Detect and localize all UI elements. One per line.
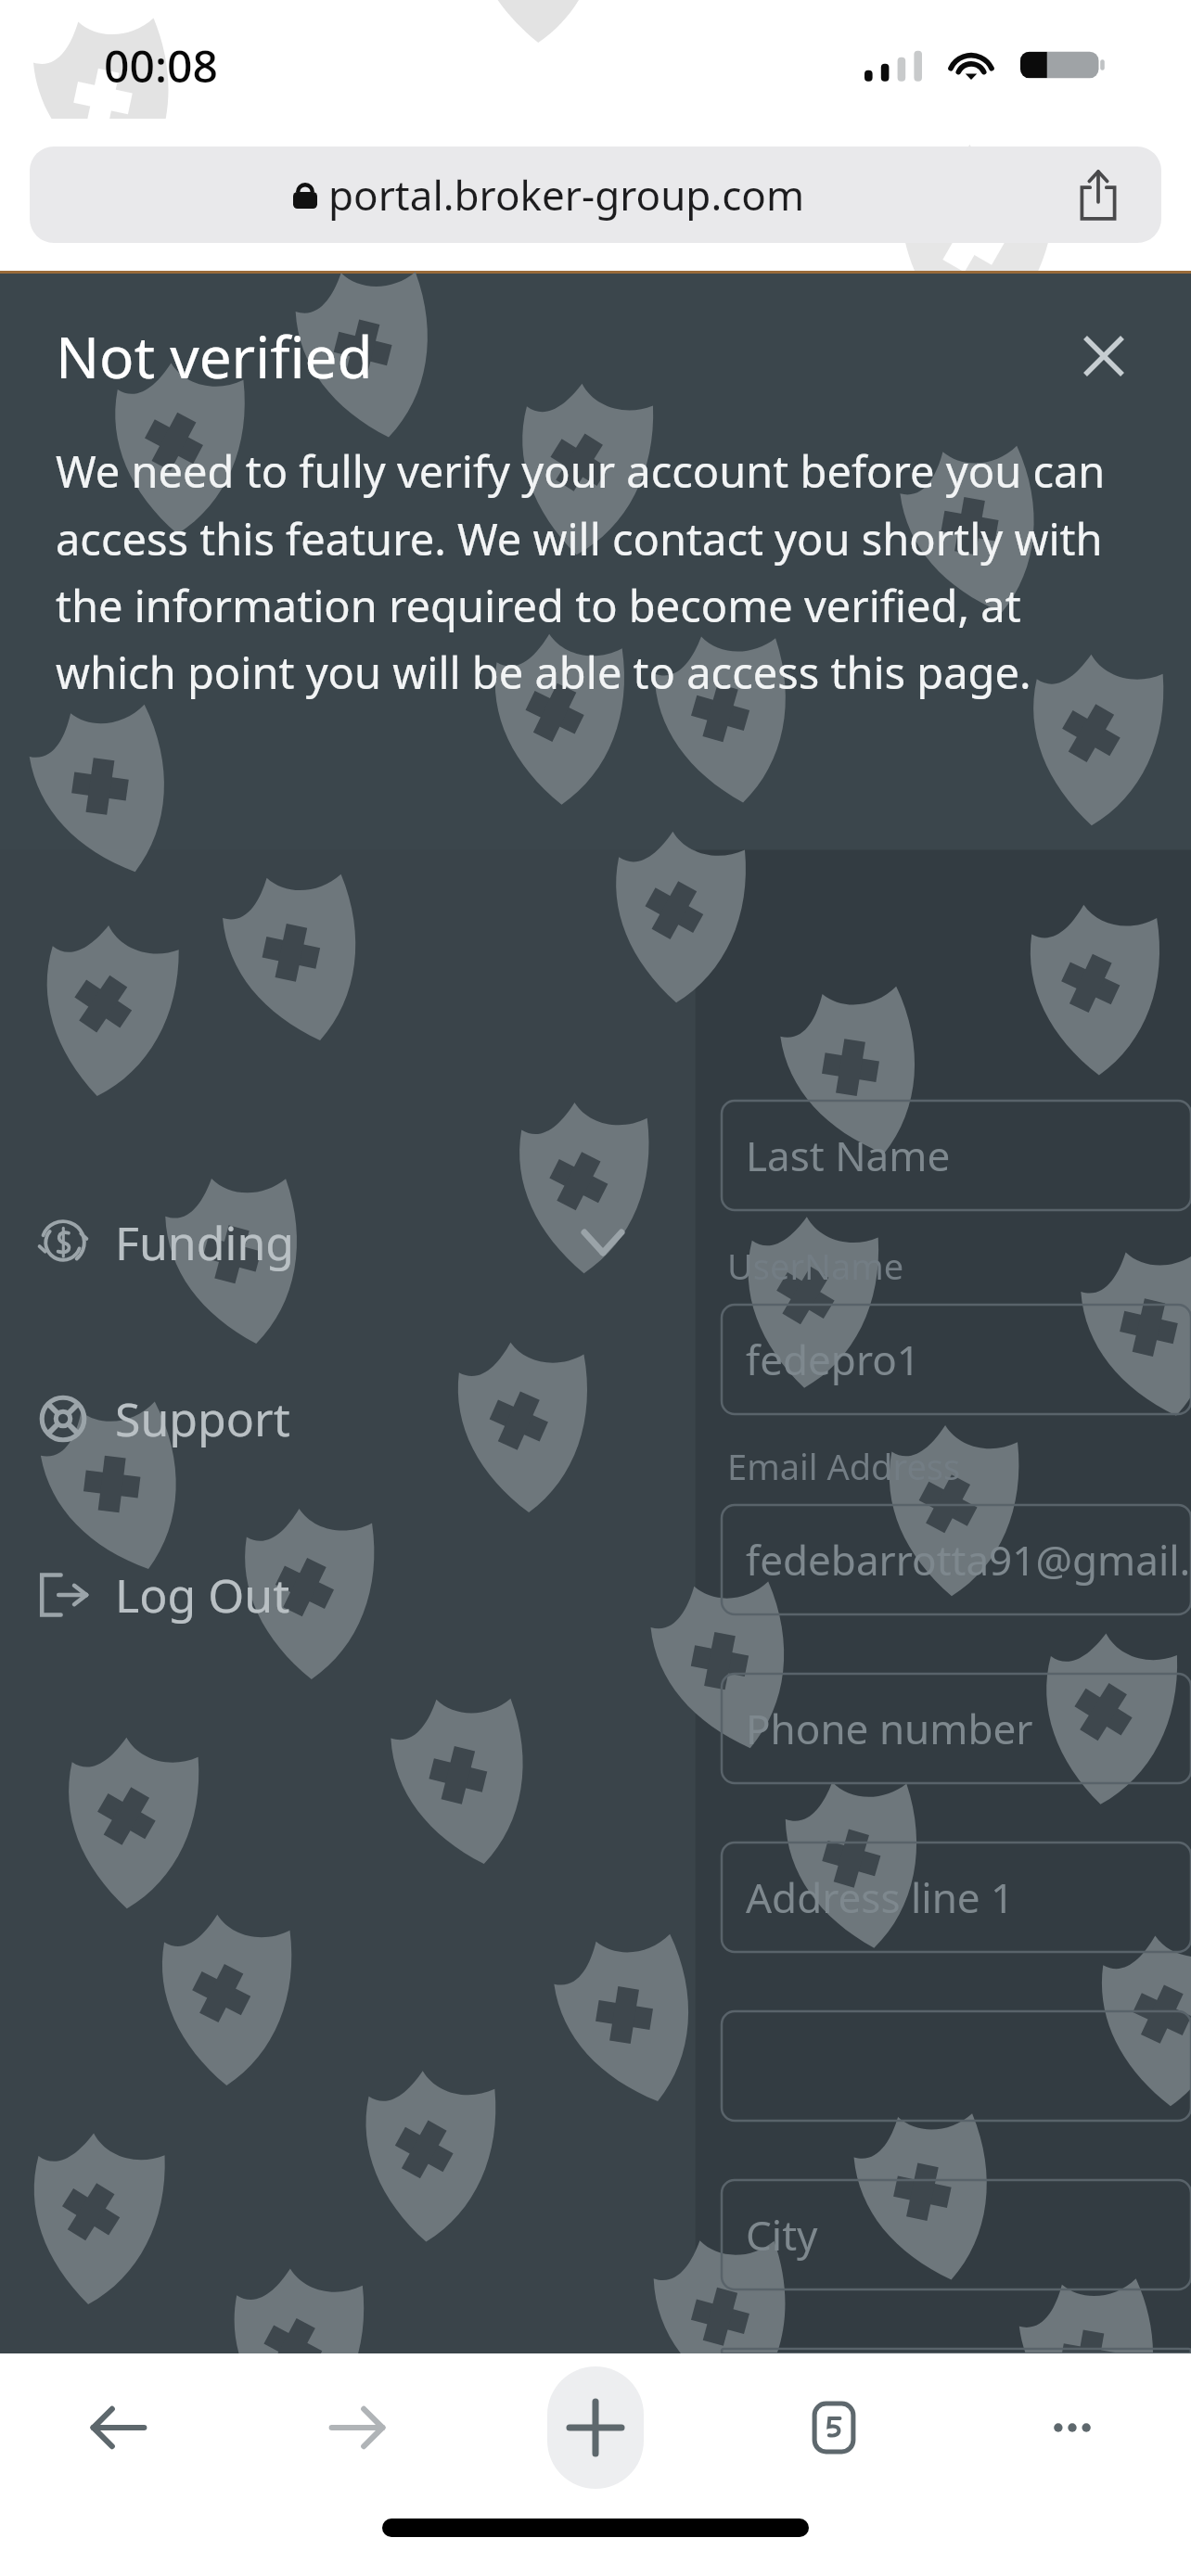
button[interactable]: Back bbox=[0, 2353, 237, 2502]
button[interactable]: Funding bbox=[0, 1198, 696, 1287]
staticText: fedebarrotta91@gmail.c bbox=[746, 1532, 1191, 1588]
button[interactable]: fedepro1 bbox=[722, 1305, 1191, 1414]
staticText: Log Out bbox=[115, 1563, 290, 1626]
button[interactable]: Log Out bbox=[0, 1550, 696, 1639]
staticText: UserName bbox=[727, 1242, 904, 1290]
button[interactable]: fedebarrotta91@gmail.c bbox=[722, 1505, 1191, 1614]
button[interactable]: Tabs bbox=[714, 2353, 953, 2502]
staticText: fedepro1 bbox=[746, 1332, 920, 1387]
staticText: We need to fully verify your account bef… bbox=[56, 441, 1141, 701]
staticText: Email Address bbox=[727, 1442, 961, 1490]
staticText: Funding bbox=[115, 1211, 295, 1274]
button[interactable]: Forward bbox=[237, 2353, 476, 2502]
button[interactable] bbox=[722, 2349, 1191, 2353]
staticText: City bbox=[746, 2207, 818, 2263]
button[interactable]: portal.broker-group.com bbox=[30, 147, 1161, 243]
staticText: Phone number bbox=[746, 1701, 1033, 1756]
staticText: portal.broker-group.com bbox=[328, 167, 805, 223]
staticText: 00:08 bbox=[104, 35, 218, 96]
button[interactable]: Close bbox=[1059, 312, 1148, 401]
button[interactable]: More bbox=[953, 2353, 1191, 2502]
button[interactable] bbox=[722, 2011, 1191, 2121]
staticText: Address line 1 bbox=[746, 1869, 1015, 1925]
button[interactable]: Share bbox=[1069, 165, 1128, 224]
button[interactable]: Support bbox=[0, 1374, 696, 1463]
button[interactable]: Last Name bbox=[722, 1101, 1191, 1210]
button[interactable]: Phone number bbox=[722, 1674, 1191, 1783]
staticText: Not verified bbox=[56, 317, 373, 395]
button[interactable]: City bbox=[722, 2180, 1191, 2289]
staticText: Last Name bbox=[746, 1128, 951, 1183]
button[interactable]: Address line 1 bbox=[722, 1843, 1191, 1952]
button[interactable]: New tab bbox=[476, 2353, 714, 2502]
staticText: Support bbox=[115, 1387, 290, 1450]
